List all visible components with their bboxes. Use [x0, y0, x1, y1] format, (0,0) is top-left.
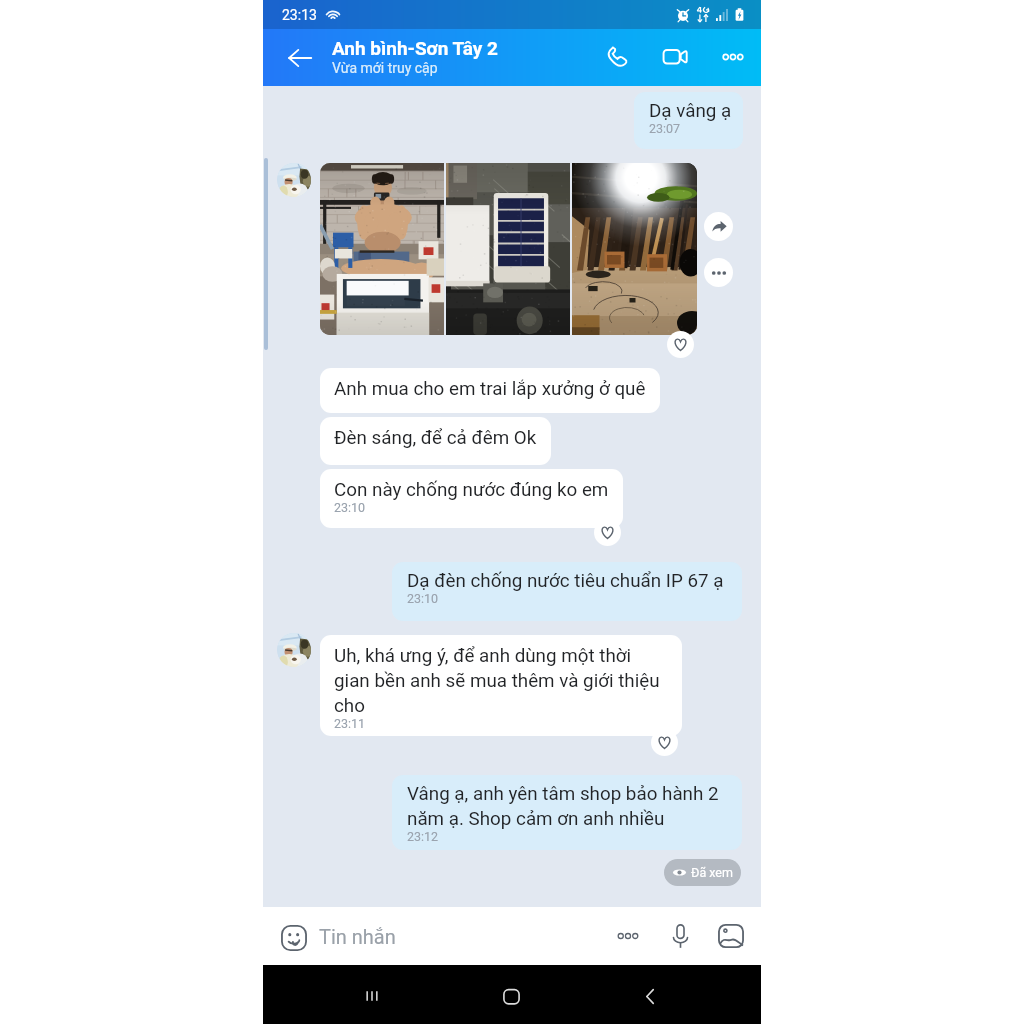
- button[interactable]: Like: [651, 729, 678, 756]
- button[interactable]: Forward: [704, 212, 733, 241]
- button[interactable]: Back: [629, 975, 671, 1017]
- button[interactable]: Vâng ạ, anh yên tâm shop bảo hành 2 năm …: [392, 775, 742, 850]
- button[interactable]: Uh, khá ưng ý, để anh dùng một thời gian…: [320, 635, 682, 736]
- button[interactable]: More actions: [611, 919, 645, 953]
- staticText: 23:10: [334, 500, 366, 515]
- button[interactable]: Đèn sáng, để cả đêm Ok: [320, 417, 551, 465]
- button[interactable]: Like: [667, 331, 694, 358]
- button[interactable]: Video call: [657, 39, 693, 75]
- button[interactable]: More: [704, 258, 733, 287]
- staticText: 23:10: [407, 591, 439, 606]
- staticText: Đã xem: [691, 865, 733, 880]
- button[interactable]: Anh mua cho em trai lắp xưởng ở quê: [320, 368, 660, 413]
- button[interactable]: Like: [594, 519, 621, 546]
- button[interactable]: More options: [715, 39, 751, 75]
- staticText: Anh mua cho em trai lắp xưởng ở quê: [334, 378, 646, 400]
- staticText: Anh bình-Sơn Tây 2: [332, 37, 498, 59]
- button[interactable]: Con này chống nước đúng ko em: [320, 469, 623, 528]
- button[interactable]: Photo 2: [446, 163, 570, 335]
- staticText: Uh, khá ưng ý, để anh dùng một thời gian…: [334, 645, 660, 717]
- button[interactable]: Dạ đèn chống nước tiêu chuẩn IP 67 ạ: [392, 562, 742, 621]
- button[interactable]: Đã xem: [664, 859, 741, 886]
- button[interactable]: Home: [490, 975, 532, 1017]
- staticText: Dạ vâng ạ: [649, 100, 731, 122]
- staticText: Dạ đèn chống nước tiêu chuẩn IP 67 ạ: [407, 570, 724, 592]
- button[interactable]: Emoji: [277, 921, 311, 955]
- button[interactable]: Voice message: [663, 919, 697, 953]
- staticText: 23:11: [334, 716, 366, 731]
- staticText: Vâng ạ, anh yên tâm shop bảo hành 2 năm …: [407, 783, 719, 830]
- staticText: 23:13: [282, 7, 317, 23]
- staticText: Vừa mới truy cập: [332, 60, 438, 76]
- button[interactable]: Back: [283, 41, 317, 75]
- button[interactable]: Dạ vâng ạ: [634, 92, 743, 149]
- staticText: Con này chống nước đúng ko em: [334, 479, 609, 501]
- button[interactable]: Gallery: [714, 919, 748, 953]
- staticText: Tin nhắn: [319, 925, 396, 948]
- button[interactable]: Photo 1: [320, 163, 444, 335]
- button[interactable]: Photo 3: [572, 163, 697, 335]
- staticText: Đèn sáng, để cả đêm Ok: [334, 427, 537, 449]
- button[interactable]: Call: [599, 39, 635, 75]
- button[interactable]: Recent apps: [351, 975, 393, 1017]
- staticText: 23:07: [649, 121, 681, 136]
- staticText: 23:12: [407, 829, 439, 844]
